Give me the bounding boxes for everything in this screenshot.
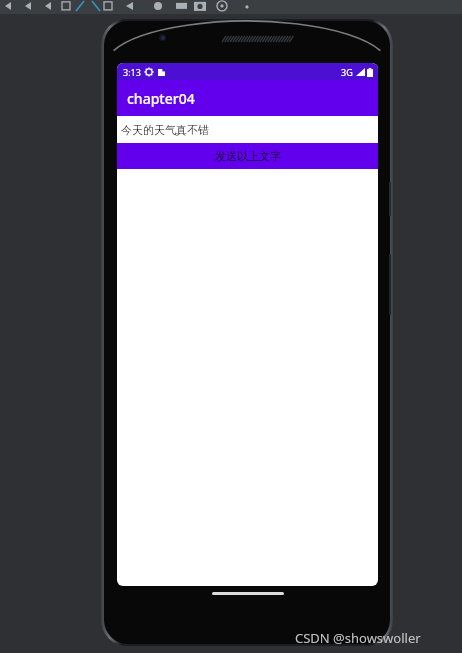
staticText: chapter04 — [127, 89, 195, 108]
button[interactable]: 今天的天气真不错 — [117, 116, 378, 143]
staticText: 3:13 — [123, 66, 141, 78]
staticText: 今天的天气真不错 — [121, 123, 209, 137]
staticText: 发送以上文字 — [215, 149, 281, 163]
staticText: 3G — [341, 66, 353, 78]
button[interactable]: 发送以上文字 — [117, 143, 378, 169]
staticText: CSDN @showswoller — [295, 629, 421, 647]
